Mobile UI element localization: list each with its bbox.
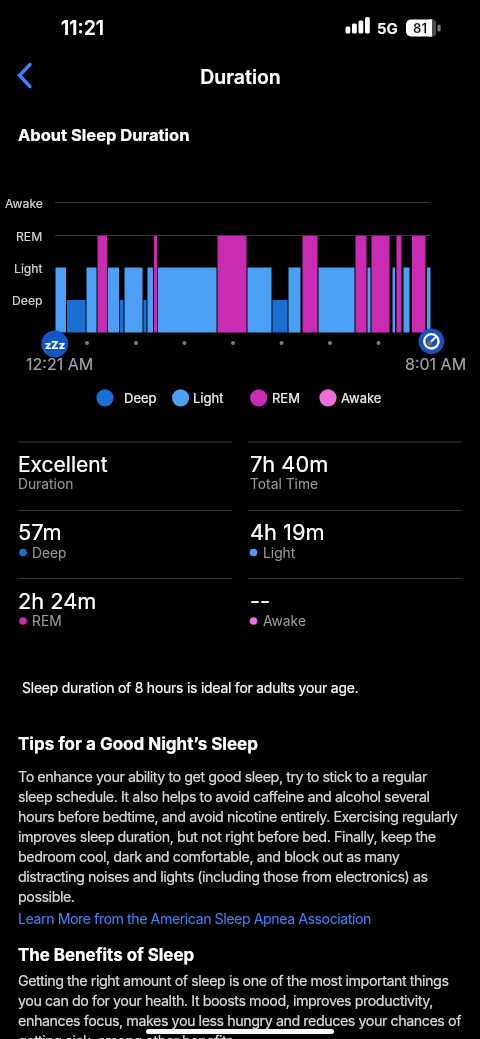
staticText: 8:01 AM [405, 354, 467, 373]
staticText: Excellent [18, 452, 108, 477]
staticText: Total Time [250, 476, 319, 493]
staticText: Deep [12, 293, 43, 308]
staticText: Deep [32, 545, 67, 562]
staticText: 11:21 [61, 16, 105, 40]
staticText: To enhance your ability to get good slee… [18, 768, 458, 905]
staticText: Duration [200, 65, 281, 89]
staticText: Getting the right amount of sleep is one… [18, 972, 461, 1039]
staticText: Light [14, 261, 43, 276]
staticText: REM [272, 390, 300, 406]
staticText: zZz [45, 338, 65, 351]
staticText: 5G [377, 19, 398, 37]
button[interactable]: Learn More from the American Sleep Apnea… [0, 0, 353, 50]
staticText: -- [250, 588, 271, 614]
staticText: 12:21 AM [26, 354, 94, 373]
staticText: Deep [124, 390, 157, 406]
staticText: Learn More from the American Sleep Apnea… [18, 910, 371, 927]
button[interactable] [8, 58, 44, 94]
staticText: Sleep duration of 8 hours is ideal for a… [22, 680, 359, 697]
staticText: About Sleep Duration [18, 125, 190, 145]
staticText: The Benefits of Sleep [18, 945, 195, 965]
staticText: REM [16, 229, 43, 244]
staticText: Awake [5, 196, 43, 211]
staticText: Duration [18, 476, 74, 493]
staticText: 2h 24m [18, 588, 97, 614]
staticText: Light [193, 390, 224, 406]
staticText: Light [263, 545, 296, 562]
staticText: Tips for a Good Night’s Sleep [18, 734, 258, 755]
staticText: 7h 40m [250, 451, 329, 477]
staticText: 81 [413, 20, 427, 36]
staticText: Awake [341, 390, 382, 406]
staticText: 4h 19m [250, 519, 325, 545]
staticText: 57m [18, 519, 62, 545]
staticText: REM [32, 613, 62, 630]
staticText: Awake [263, 613, 306, 630]
